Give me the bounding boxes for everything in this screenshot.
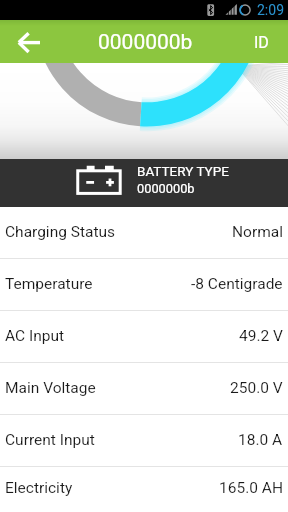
staticText: 49.2 V — [239, 327, 283, 345]
staticText: Main Voltage — [5, 379, 96, 397]
button[interactable]: ID — [246, 20, 288, 63]
staticText: Normal — [232, 223, 283, 241]
staticText: 250.0 V — [230, 379, 283, 397]
staticText: -8 Centigrade — [191, 275, 283, 293]
button[interactable]: AC Input — [0, 311, 288, 363]
staticText: 18.0 A — [238, 431, 283, 449]
staticText: ID — [254, 33, 269, 52]
button[interactable]: Back — [0, 20, 52, 63]
staticText: 0000000b — [137, 181, 195, 196]
staticText: BATTERY TYPE — [137, 163, 229, 179]
staticText: Current Input — [5, 431, 95, 449]
staticText: AC Input — [5, 327, 65, 345]
button[interactable]: Main Voltage — [0, 363, 288, 415]
button[interactable]: Current Input — [0, 415, 288, 467]
staticText: 2:09 — [257, 2, 284, 18]
button[interactable]: Electricity — [0, 467, 288, 512]
staticText: 165.0 AH — [219, 479, 283, 497]
button[interactable]: Temperature — [0, 259, 288, 311]
button[interactable]: Charging Status — [0, 207, 288, 259]
staticText: Temperature — [5, 275, 93, 293]
staticText: Charging Status — [5, 223, 116, 241]
staticText: Electricity — [5, 479, 73, 497]
staticText: 0000000b — [98, 30, 193, 55]
